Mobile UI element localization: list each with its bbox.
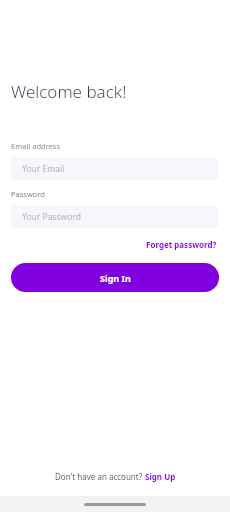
staticText: Email address (11, 141, 61, 151)
staticText: Forget password? (146, 239, 217, 250)
staticText: Password (11, 189, 45, 199)
staticText: Sign In (100, 272, 131, 284)
button[interactable]: Forget password? (144, 237, 219, 252)
button[interactable]: Sign In (11, 263, 219, 292)
button[interactable]: Your Password (11, 205, 219, 228)
staticText: Welcome back! (11, 80, 127, 103)
other: Home gesture bar (84, 503, 146, 506)
staticText: Sign Up (145, 471, 176, 482)
staticText: Your Password (22, 211, 81, 223)
button[interactable]: Your Email (11, 157, 219, 180)
button[interactable]: Don't have an account? (55, 471, 176, 482)
staticText: Don't have an account? (55, 471, 145, 482)
staticText: Your Email (22, 163, 65, 175)
